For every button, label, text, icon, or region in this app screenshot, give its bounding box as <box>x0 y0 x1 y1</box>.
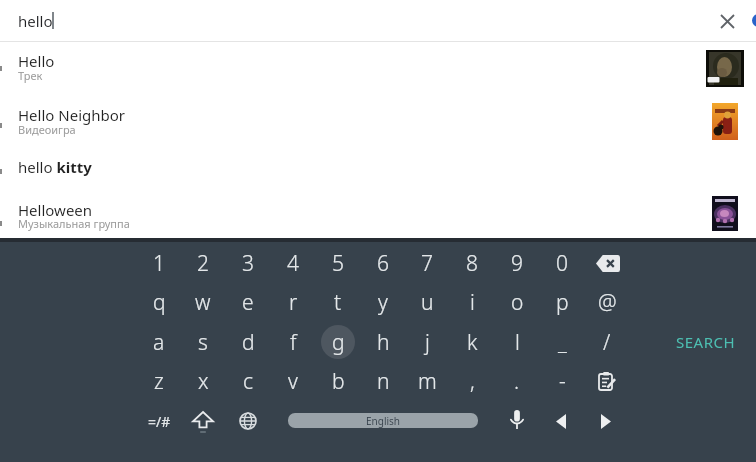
staticText: j <box>425 328 430 357</box>
staticText: Hello <box>18 51 55 71</box>
button[interactable]: v <box>271 359 315 403</box>
button[interactable]: . <box>495 359 539 403</box>
staticText: k <box>467 328 478 357</box>
staticText: Hello Neighbor <box>18 105 126 125</box>
staticText: Трек <box>18 68 43 83</box>
button[interactable]: 5 <box>316 241 360 285</box>
button[interactable] <box>0 188 756 240</box>
button[interactable]: t <box>316 280 360 324</box>
staticText: 4 <box>287 249 299 278</box>
button[interactable]: 1 <box>137 241 181 285</box>
button[interactable] <box>539 399 583 443</box>
button[interactable]: j <box>405 320 449 364</box>
staticText: 1 <box>153 249 165 278</box>
staticText: English <box>366 414 401 428</box>
button[interactable]: q <box>137 280 181 324</box>
button[interactable] <box>226 399 270 443</box>
button[interactable]: g <box>316 320 360 364</box>
button[interactable]: b <box>316 359 360 403</box>
button[interactable]: 8 <box>450 241 494 285</box>
staticText: hello kitty <box>18 157 92 177</box>
button[interactable]: English <box>288 413 478 428</box>
button[interactable]: n <box>361 359 405 403</box>
staticText: c <box>243 367 253 396</box>
button[interactable] <box>0 149 756 188</box>
staticText: d <box>242 328 255 357</box>
staticText: m <box>418 367 437 396</box>
staticText: _ <box>558 328 567 357</box>
button[interactable] <box>181 399 225 443</box>
staticText: p <box>556 288 569 317</box>
button[interactable]: 0 <box>540 241 584 285</box>
button[interactable]: , <box>450 359 494 403</box>
button[interactable]: - <box>540 359 584 403</box>
button[interactable]: / <box>585 320 629 364</box>
staticText: q <box>153 288 166 317</box>
button[interactable]: _ <box>540 320 584 364</box>
button[interactable]: 9 <box>495 241 539 285</box>
button[interactable]: z <box>137 359 181 403</box>
button[interactable]: h <box>361 320 405 364</box>
staticText: i <box>470 288 475 317</box>
staticText: =/# <box>148 412 171 431</box>
staticText: 2 <box>197 249 209 278</box>
staticText: e <box>242 288 254 317</box>
button[interactable] <box>584 399 628 443</box>
button[interactable]: r <box>271 280 315 324</box>
button[interactable]: l <box>495 320 539 364</box>
button[interactable]: o <box>495 280 539 324</box>
button[interactable] <box>0 42 756 95</box>
button[interactable] <box>714 8 740 34</box>
staticText: Видеоигра <box>18 122 76 137</box>
staticText: y <box>378 288 388 317</box>
staticText: v <box>288 367 298 396</box>
button[interactable]: SEARCH <box>668 330 744 354</box>
button[interactable]: u <box>405 280 449 324</box>
staticText: z <box>154 367 164 396</box>
button[interactable]: @ <box>585 280 629 324</box>
button[interactable]: y <box>361 280 405 324</box>
button[interactable]: 2 <box>181 241 225 285</box>
staticText: f <box>290 328 297 357</box>
staticText: t <box>334 288 342 317</box>
button[interactable]: a <box>137 320 181 364</box>
button[interactable]: c <box>226 359 270 403</box>
staticText: l <box>515 328 520 357</box>
button[interactable]: 4 <box>271 241 315 285</box>
staticText: w <box>195 288 211 317</box>
staticText: SEARCH <box>676 332 736 352</box>
staticText: 6 <box>377 249 389 278</box>
staticText: Музыкальная группа <box>18 216 130 231</box>
button[interactable]: e <box>226 280 270 324</box>
button[interactable]: f <box>271 320 315 364</box>
button[interactable]: d <box>226 320 270 364</box>
button[interactable]: w <box>181 280 225 324</box>
button[interactable]: k <box>450 320 494 364</box>
staticText: Helloween <box>18 200 93 220</box>
button[interactable] <box>495 398 539 442</box>
staticText: h <box>377 328 390 357</box>
button[interactable]: s <box>181 320 225 364</box>
button[interactable]: i <box>450 280 494 324</box>
staticText: - <box>559 367 566 396</box>
staticText: x <box>198 367 209 396</box>
staticText: s <box>198 328 208 357</box>
staticText: 9 <box>511 249 523 278</box>
button[interactable] <box>585 359 629 403</box>
staticText: 0 <box>556 249 568 278</box>
staticText: 5 <box>332 249 344 278</box>
button[interactable]: p <box>540 280 584 324</box>
staticText: a <box>153 328 165 357</box>
button[interactable]: =/# <box>137 399 181 443</box>
button[interactable]: 3 <box>226 241 270 285</box>
button[interactable]: 7 <box>405 241 449 285</box>
button[interactable]: 6 <box>361 241 405 285</box>
staticText: / <box>603 328 611 357</box>
staticText: , <box>470 367 475 396</box>
button[interactable] <box>0 95 756 149</box>
button[interactable] <box>586 241 630 285</box>
button[interactable]: x <box>181 359 225 403</box>
button[interactable]: hello <box>0 0 756 41</box>
button[interactable]: m <box>405 359 449 403</box>
staticText: 3 <box>242 249 254 278</box>
